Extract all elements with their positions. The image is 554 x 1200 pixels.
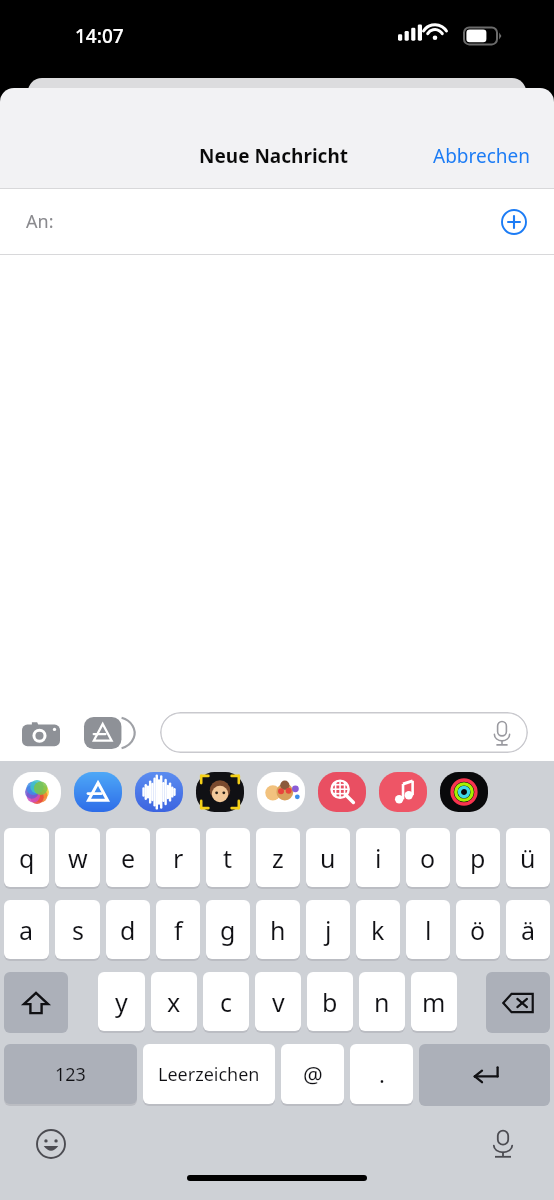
button[interactable]: n: [359, 972, 405, 1031]
button[interactable]: Diktieren: [490, 1128, 516, 1160]
button[interactable]: e: [106, 828, 150, 887]
button[interactable]: y: [98, 972, 145, 1031]
button[interactable]: Emoji: [36, 1129, 66, 1159]
button[interactable]: ü: [506, 828, 550, 887]
button[interactable]: Memoji Sticker: [256, 771, 306, 813]
staticText: ö: [470, 913, 486, 947]
button[interactable]: h: [256, 900, 300, 959]
staticText: b: [322, 985, 338, 1019]
button[interactable]: Aktivität: [439, 771, 489, 813]
button[interactable]: Fotos: [12, 771, 62, 813]
button[interactable]: Leerzeichen: [143, 1044, 275, 1104]
staticText: a: [19, 913, 34, 947]
staticText: q: [19, 841, 35, 875]
staticText: g: [220, 913, 236, 947]
button[interactable]: Eingabetaste: [419, 1044, 550, 1106]
button[interactable]: j: [306, 900, 350, 959]
staticText: n: [374, 985, 390, 1019]
button[interactable]: w: [55, 828, 100, 887]
staticText: x: [167, 985, 181, 1019]
staticText: s: [72, 913, 84, 947]
staticText: ü: [520, 841, 536, 875]
button[interactable]: g: [206, 900, 250, 959]
button[interactable]: z: [256, 828, 300, 887]
button[interactable]: App Store: [73, 771, 123, 813]
button[interactable]: o: [406, 828, 450, 887]
button[interactable]: b: [307, 972, 353, 1031]
button[interactable]: q: [4, 828, 49, 887]
staticText: e: [121, 841, 136, 875]
staticText: p: [470, 841, 486, 875]
staticText: l: [425, 913, 432, 947]
staticText: h: [270, 913, 286, 947]
button[interactable]: k: [356, 900, 400, 959]
staticText: c: [220, 985, 233, 1019]
button[interactable]: x: [151, 972, 197, 1031]
button[interactable]: f: [156, 900, 200, 959]
button[interactable]: Memoji: [195, 771, 245, 813]
button[interactable]: c: [203, 972, 249, 1031]
staticText: r: [173, 841, 184, 875]
button[interactable]: m: [411, 972, 457, 1031]
button[interactable]: Kontakt hinzufügen: [501, 209, 527, 235]
button[interactable]: An:: [0, 189, 554, 254]
button[interactable]: s: [55, 900, 100, 959]
staticText: An:: [26, 209, 54, 234]
button[interactable]: u: [306, 828, 350, 887]
staticText: j: [325, 913, 332, 947]
button[interactable]: Umschalttaste: [4, 972, 68, 1033]
staticText: 14:07: [75, 23, 124, 49]
button[interactable]: ä: [506, 900, 550, 959]
staticText: i: [375, 841, 382, 875]
button[interactable]: App Store: [84, 717, 130, 749]
button[interactable]: #images: [317, 771, 367, 813]
staticText: ä: [521, 913, 536, 947]
button[interactable]: t: [206, 828, 250, 887]
button[interactable]: l: [406, 900, 450, 959]
button[interactable]: a: [4, 900, 49, 959]
staticText: k: [371, 913, 385, 947]
button[interactable]: Abbrechen: [423, 143, 541, 169]
button[interactable]: p: [456, 828, 500, 887]
staticText: d: [120, 913, 136, 947]
button[interactable]: Kamera: [22, 718, 60, 748]
button[interactable]: .: [350, 1044, 413, 1104]
staticText: w: [68, 841, 88, 875]
button[interactable]: Audio: [134, 771, 184, 813]
button[interactable]: Neue Nachricht: [199, 143, 348, 169]
button[interactable]: ö: [456, 900, 500, 959]
button[interactable]: Löschen: [486, 972, 550, 1033]
staticText: 123: [55, 1062, 86, 1087]
staticText: Abbrechen: [433, 143, 531, 169]
staticText: m: [422, 985, 446, 1019]
staticText: z: [272, 841, 284, 875]
button[interactable]: r: [156, 828, 200, 887]
button[interactable]: Musik: [378, 771, 428, 813]
staticText: t: [223, 841, 233, 875]
staticText: @: [303, 1059, 323, 1089]
staticText: v: [272, 985, 285, 1019]
button[interactable]: [160, 712, 528, 753]
staticText: y: [115, 985, 128, 1019]
staticText: u: [320, 841, 336, 875]
button[interactable]: 123: [4, 1044, 137, 1104]
button[interactable]: v: [255, 972, 301, 1031]
staticText: Leerzeichen: [158, 1062, 260, 1087]
staticText: .: [379, 1059, 385, 1089]
staticText: Neue Nachricht: [199, 143, 348, 169]
staticText: f: [174, 913, 183, 947]
button[interactable]: i: [356, 828, 400, 887]
staticText: o: [420, 841, 436, 875]
button[interactable]: d: [106, 900, 150, 959]
button[interactable]: @: [281, 1044, 344, 1104]
